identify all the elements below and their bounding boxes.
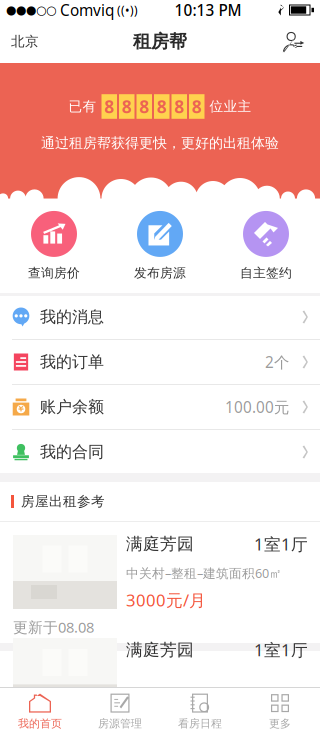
button[interactable]: 我的订单	[0, 340, 320, 384]
staticText: 更新于08.08	[13, 617, 94, 637]
button[interactable]: 满庭芳园	[0, 522, 320, 643]
staticText: 中关村–整租–建筑面积60㎡	[126, 564, 282, 582]
staticText: 我的首页	[18, 717, 62, 730]
button[interactable]: 我的消息	[0, 295, 320, 339]
staticText: 1室1厅	[254, 533, 308, 555]
button[interactable]: 我的合同	[0, 430, 320, 474]
staticText: 满庭芳园	[126, 639, 194, 660]
staticText: 查询房价	[28, 265, 80, 281]
staticText: 满庭芳园	[126, 533, 194, 554]
staticText: 账户余额	[40, 397, 104, 417]
button[interactable]: 看房日程	[160, 688, 240, 736]
staticText: 房源管理	[98, 717, 142, 730]
staticText: 2个	[265, 352, 289, 372]
staticText: 10:13 PM	[174, 0, 241, 20]
staticText: 8	[104, 95, 114, 118]
staticText: ((•))	[114, 2, 138, 18]
button[interactable]: 北京	[11, 20, 39, 63]
button[interactable]: 满庭芳园	[0, 651, 320, 687]
staticText: 8	[157, 95, 167, 118]
button[interactable]: 账户余额	[0, 385, 320, 429]
staticText: 位业主	[209, 98, 251, 115]
button[interactable]: 自主签约	[213, 199, 319, 293]
staticText: 房屋出租参考	[21, 493, 105, 510]
staticText: 租房帮	[133, 30, 187, 53]
staticText: 发布房源	[134, 265, 186, 281]
staticText: 我的合同	[40, 442, 104, 462]
staticText: 8	[174, 95, 184, 118]
staticText: 3000元/月	[126, 589, 206, 611]
staticText: 已有	[68, 98, 96, 115]
staticText: 我的订单	[40, 352, 104, 372]
button[interactable]: 发布房源	[107, 199, 213, 293]
staticText: 更多	[269, 717, 291, 730]
staticText: 1室1厅	[254, 638, 308, 661]
staticText: 8	[139, 95, 149, 118]
button[interactable]: 房源管理	[80, 688, 160, 736]
button[interactable]: 我的首页	[0, 688, 80, 736]
staticText: 北京	[11, 33, 39, 50]
button[interactable]: 更多	[240, 688, 320, 736]
staticText: ●●●○○	[6, 3, 56, 17]
staticText: 8	[122, 95, 132, 118]
staticText: 100.00元	[225, 397, 289, 417]
staticText: Comviq	[56, 0, 114, 20]
staticText: 看房日程	[178, 717, 222, 730]
staticText: 8	[192, 95, 202, 118]
button[interactable]: 查询房价	[1, 199, 107, 293]
button[interactable]: Switch account	[277, 20, 309, 63]
staticText: 自主签约	[240, 265, 292, 281]
staticText: 通过租房帮获得更快，更好的出租体验	[41, 134, 279, 152]
staticText: 我的消息	[40, 307, 104, 327]
